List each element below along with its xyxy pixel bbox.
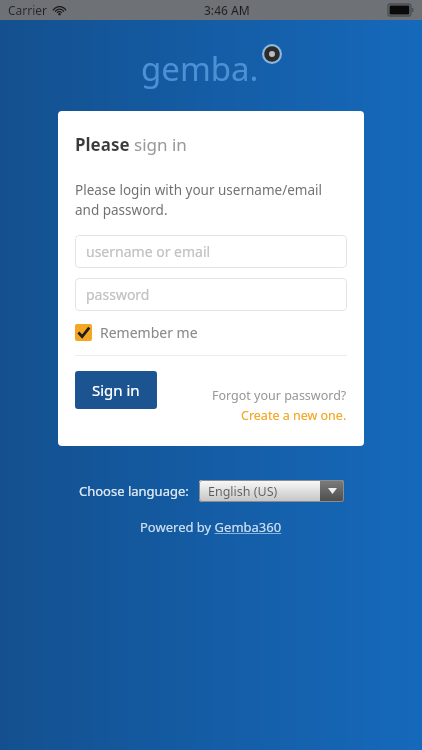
staticText: username or email	[86, 242, 211, 261]
staticText: Carrier	[8, 2, 48, 18]
button[interactable]: password	[75, 278, 347, 311]
staticText: English (US)	[208, 483, 278, 500]
staticText: Choose language:	[79, 482, 189, 500]
button[interactable]: username or email	[75, 235, 347, 268]
staticText: Create a new one.	[241, 407, 347, 424]
staticText: Please login with your username/email an…	[75, 181, 347, 219]
staticText: Powered by Gemba360	[140, 518, 282, 536]
staticText: Sign in	[92, 380, 140, 400]
button[interactable]: Sign in	[75, 371, 157, 409]
staticText: gemba.	[141, 46, 259, 91]
staticText: password	[86, 285, 150, 304]
button[interactable]: Forgot your password?	[212, 387, 347, 404]
button[interactable]: Powered by Gemba360	[140, 518, 282, 536]
staticText: Remember me	[100, 323, 198, 342]
button[interactable]: Choose language, English (US)	[199, 480, 344, 502]
button[interactable]: Create a new one.	[241, 407, 347, 424]
staticText: 3:46 AM	[204, 2, 250, 18]
staticText: Forgot your password?	[212, 387, 347, 404]
button[interactable]: Remember me	[75, 323, 198, 342]
staticText: Please sign in	[75, 133, 187, 156]
